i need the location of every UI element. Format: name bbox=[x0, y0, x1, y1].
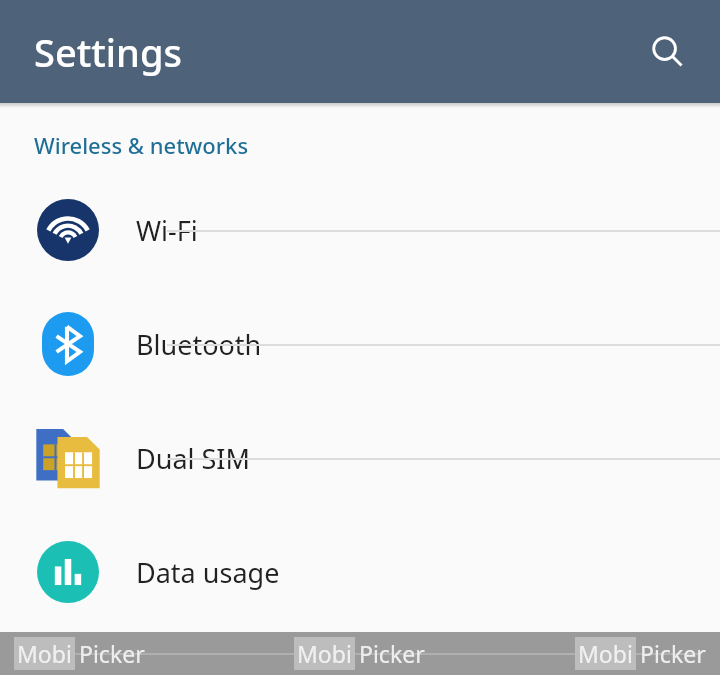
staticText: Wireless & networks bbox=[34, 130, 249, 160]
button[interactable]: Data usage bbox=[0, 516, 720, 628]
staticText: Mobi bbox=[17, 638, 72, 669]
staticText: Dual SIM bbox=[136, 440, 250, 477]
staticText: Data usage bbox=[136, 554, 280, 591]
staticText: Bluetooth bbox=[136, 326, 262, 363]
staticText: Wi-Fi bbox=[136, 212, 198, 249]
staticText: Picker bbox=[79, 638, 145, 669]
button[interactable]: Dual SIM bbox=[0, 402, 720, 514]
button[interactable]: Search bbox=[640, 24, 696, 80]
staticText: Mobi bbox=[578, 638, 633, 669]
staticText: Picker bbox=[640, 638, 706, 669]
staticText: Settings bbox=[34, 26, 182, 78]
staticText: Mobi bbox=[297, 638, 352, 669]
staticText: Picker bbox=[359, 638, 425, 669]
button[interactable]: Bluetooth bbox=[0, 288, 720, 400]
button[interactable]: Wi-Fi bbox=[0, 174, 720, 286]
